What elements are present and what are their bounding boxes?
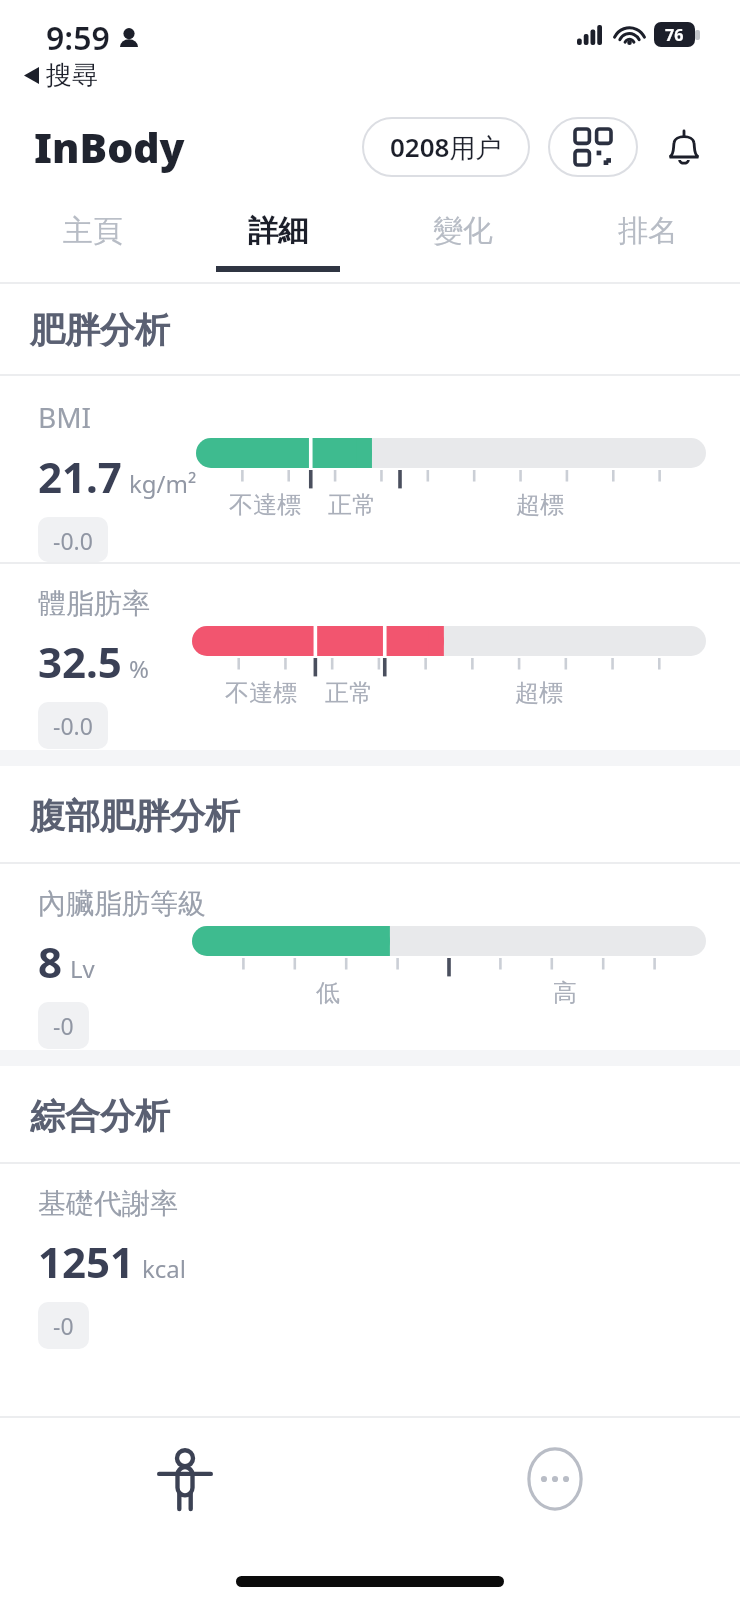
staticText: -0.0 bbox=[53, 710, 93, 741]
button[interactable]: 詳細 bbox=[185, 198, 370, 282]
staticText: 肥胖分析 bbox=[30, 308, 170, 352]
button[interactable]: More options bbox=[370, 1418, 740, 1540]
staticText: -0 bbox=[53, 1010, 74, 1041]
staticText: 9:59 bbox=[46, 16, 110, 60]
staticText: 超標 bbox=[516, 490, 564, 520]
button[interactable]: Scan QR code bbox=[548, 117, 638, 177]
staticText: 腹部肥胖分析 bbox=[30, 794, 240, 838]
staticText: 主頁 bbox=[63, 212, 123, 250]
staticText: -0 bbox=[53, 1310, 74, 1341]
staticText: 基礎代謝率 bbox=[38, 1186, 178, 1221]
staticText: 不達標 bbox=[225, 678, 297, 708]
staticText: InBody bbox=[34, 119, 185, 175]
staticText: 8 bbox=[38, 933, 63, 990]
button[interactable]: 內臟脂肪等級 bbox=[0, 864, 740, 1050]
staticText: 76 bbox=[665, 24, 684, 46]
staticText: 21.7 bbox=[38, 448, 122, 505]
staticText: 變化 bbox=[433, 212, 493, 250]
staticText: kcal bbox=[142, 1252, 186, 1285]
staticText: -0.0 bbox=[53, 525, 93, 554]
staticText: 低 bbox=[316, 978, 340, 1008]
staticText: % bbox=[129, 652, 149, 685]
staticText: 綜合分析 bbox=[30, 1094, 170, 1138]
staticText: Lv bbox=[70, 952, 95, 985]
staticText: kg/m² bbox=[129, 467, 197, 500]
staticText: 高 bbox=[553, 978, 577, 1008]
staticText: 正常 bbox=[328, 490, 376, 520]
staticText: 搜尋 bbox=[46, 59, 98, 92]
staticText: 32.5 bbox=[38, 633, 122, 690]
staticText: 內臟脂肪等級 bbox=[38, 886, 206, 921]
button[interactable]: 排名 bbox=[555, 198, 740, 282]
staticText: 0208用户 bbox=[390, 129, 502, 165]
button[interactable]: Body composition bbox=[0, 1418, 370, 1540]
button[interactable]: BMI bbox=[0, 376, 740, 562]
staticText: 不達標 bbox=[229, 490, 301, 520]
button[interactable]: Notifications bbox=[654, 117, 714, 177]
staticText: 詳細 bbox=[248, 212, 308, 250]
staticText: BMI bbox=[38, 398, 92, 436]
staticText: 正常 bbox=[325, 678, 373, 708]
button[interactable]: 主頁 bbox=[0, 198, 185, 282]
button[interactable]: 體脂肪率 bbox=[0, 564, 740, 750]
button[interactable]: 基礎代謝率 bbox=[0, 1164, 740, 1350]
button[interactable]: 變化 bbox=[370, 198, 555, 282]
staticText: 體脂肪率 bbox=[38, 586, 150, 621]
button[interactable]: 0208用户 bbox=[362, 117, 530, 177]
staticText: 排名 bbox=[618, 212, 678, 250]
staticText: 1251 bbox=[38, 1233, 135, 1290]
staticText: 超標 bbox=[515, 678, 563, 708]
